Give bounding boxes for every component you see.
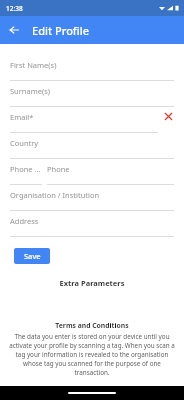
staticText: First Name(s) [10, 60, 57, 70]
button[interactable]: Back [4, 20, 24, 40]
staticText: Phone [47, 164, 70, 174]
button[interactable]: Organisation / Institution [0, 185, 184, 211]
staticText: Organisation / Institution [10, 190, 100, 200]
button[interactable]: Clear email [163, 111, 174, 122]
staticText: Address [10, 216, 39, 226]
button[interactable]: First Name(s) [0, 55, 184, 81]
staticText: Country [10, 138, 39, 148]
staticText: Phone ... [10, 164, 41, 174]
button[interactable]: Phone ... [0, 159, 44, 185]
staticText: Extra Parameters [0, 278, 184, 288]
staticText: Terms and Conditions [0, 321, 184, 330]
staticText: 12:38 [6, 4, 23, 13]
staticText: Surname(s) [10, 86, 51, 96]
button[interactable]: Save [14, 248, 50, 264]
button[interactable]: Country [0, 133, 184, 159]
staticText: Email* [10, 112, 34, 122]
staticText: Save [24, 251, 41, 261]
staticText: The data you enter is stored on your dev… [7, 332, 177, 377]
button[interactable]: Address [0, 211, 184, 237]
staticText: Edit Profile [32, 23, 90, 38]
button[interactable]: Email* [0, 107, 184, 133]
button[interactable]: Surname(s) [0, 81, 184, 107]
button[interactable]: Phone [44, 159, 184, 185]
